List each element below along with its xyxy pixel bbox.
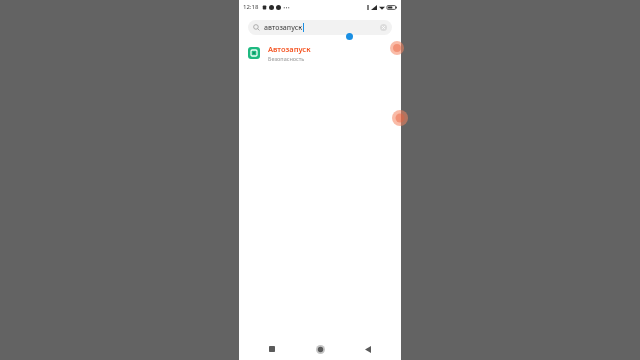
button[interactable]: Автозапуск	[239, 40, 401, 66]
button[interactable]: Floating action	[392, 110, 408, 126]
button[interactable]: Floating action	[390, 41, 404, 55]
staticText: автозапуск	[264, 23, 303, 33]
button[interactable]: Home	[305, 338, 335, 360]
staticText: 12:18	[243, 3, 259, 11]
button[interactable]: Back	[353, 338, 383, 360]
staticText: Безопасность	[268, 55, 305, 62]
staticText: Автозапуск	[268, 44, 311, 54]
button[interactable]: Clear search	[379, 23, 388, 32]
button[interactable]: автозапуск	[248, 20, 392, 35]
button[interactable]: Recents	[257, 338, 287, 360]
